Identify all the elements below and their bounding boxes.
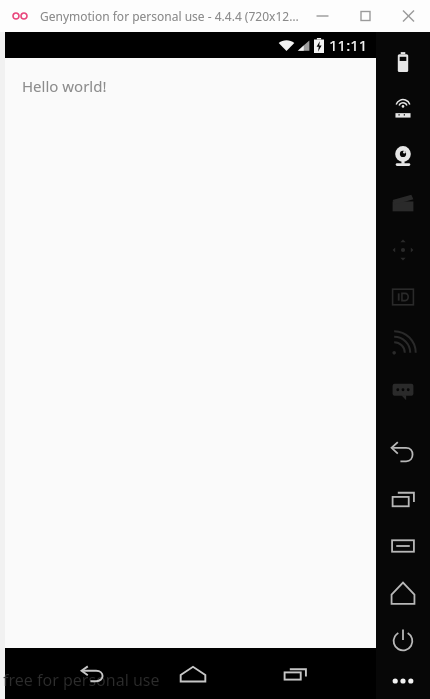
- button[interactable]: Back: [376, 428, 430, 475]
- button[interactable]: Identifiers: [376, 273, 430, 320]
- button[interactable]: Minimize: [301, 0, 344, 32]
- button[interactable]: SMS: [376, 367, 430, 414]
- button[interactable]: Screen recorder: [376, 179, 430, 226]
- button[interactable]: Maximize: [344, 0, 387, 32]
- button[interactable]: Close: [387, 0, 430, 32]
- button[interactable]: Recent apps: [376, 475, 430, 522]
- button[interactable]: Battery: [376, 38, 430, 85]
- button[interactable]: Power: [376, 616, 430, 663]
- button[interactable]: Network: [376, 320, 430, 367]
- button[interactable]: Home: [376, 569, 430, 616]
- button[interactable]: More options: [376, 663, 430, 699]
- button[interactable]: Back: [67, 648, 119, 699]
- staticText: free for personal use: [3, 669, 160, 691]
- button[interactable]: Camera: [376, 132, 430, 179]
- button[interactable]: Home: [167, 648, 219, 699]
- button[interactable]: Accelerometer: [376, 226, 430, 273]
- button[interactable]: Recent apps: [269, 648, 321, 699]
- staticText: Hello world!: [22, 76, 107, 96]
- staticText: Genymotion for personal use - 4.4.4 (720…: [40, 8, 299, 24]
- button[interactable]: GPS: [376, 85, 430, 132]
- button[interactable]: Menu: [376, 522, 430, 569]
- staticText: 11:11: [329, 35, 368, 55]
